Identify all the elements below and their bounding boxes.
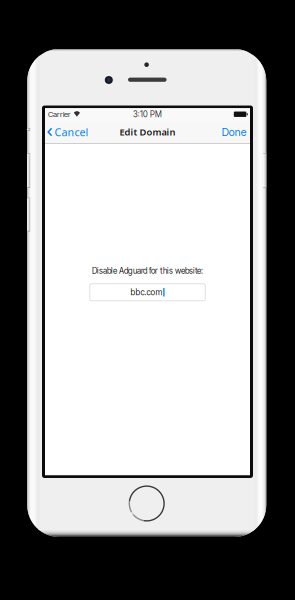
button[interactable]: Done [219, 120, 250, 144]
staticText: Disable Adguard for this website: [92, 266, 203, 276]
staticText: Carrier [48, 110, 71, 119]
staticText: bbc.com [130, 287, 162, 297]
staticText: Done [222, 125, 247, 138]
button[interactable]: Cancel [45, 120, 93, 144]
button[interactable]: bbc.com [90, 284, 205, 301]
staticText: Edit Domain [119, 126, 175, 138]
staticText: Cancel [55, 125, 89, 139]
staticText: 3:10 PM [133, 109, 162, 119]
